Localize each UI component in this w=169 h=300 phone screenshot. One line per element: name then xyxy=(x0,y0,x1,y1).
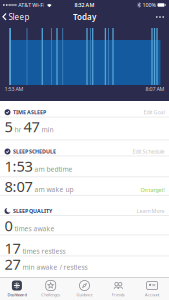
staticText: 8:32 AM xyxy=(74,1,94,9)
button[interactable]: More xyxy=(156,16,169,18)
staticText: TIME ASLEEP xyxy=(13,109,46,116)
button[interactable]: Account xyxy=(135,278,169,300)
staticText: AT&T Wi-Fi xyxy=(18,1,44,9)
staticText: 0 xyxy=(4,216,12,235)
staticText: 47 xyxy=(23,117,39,136)
staticText: Edit Schedule xyxy=(132,148,164,155)
staticText: Learn More xyxy=(136,207,164,214)
button[interactable]: Edit Goal xyxy=(143,109,164,116)
staticText: SLEEP QUALITY xyxy=(13,207,52,214)
staticText: 100% xyxy=(142,1,155,9)
staticText: Friends xyxy=(112,292,125,297)
staticText: SLEEP SCHEDULE xyxy=(13,148,56,155)
staticText: 5 xyxy=(4,117,12,136)
staticText: Today xyxy=(73,12,96,22)
staticText: 1:53 AM xyxy=(4,85,23,92)
staticText: hr xyxy=(14,125,21,134)
staticText: am wake up xyxy=(34,185,73,194)
staticText: 27 xyxy=(4,254,20,274)
button[interactable]: Dashboard xyxy=(0,278,34,300)
staticText: Challenges xyxy=(41,292,60,297)
staticText: Guidance xyxy=(76,292,92,297)
button[interactable]: Edit Schedule xyxy=(132,148,164,155)
button[interactable]: Guidance xyxy=(68,278,101,300)
staticText: 17 xyxy=(4,238,20,258)
staticText: 1:53 xyxy=(4,156,32,176)
staticText: Sleep xyxy=(8,12,29,22)
button[interactable]: Friends xyxy=(101,278,135,300)
staticText: On target! xyxy=(140,186,164,194)
staticText: 8:07 AM xyxy=(145,85,164,92)
staticText: times restless xyxy=(22,247,65,256)
button[interactable]: Challenges xyxy=(34,278,68,300)
staticText: 8:07 xyxy=(4,177,32,196)
staticText: Account xyxy=(145,292,159,297)
staticText: times awake xyxy=(14,224,54,233)
staticText: Dashboard xyxy=(7,292,26,297)
staticText: am bedtime xyxy=(34,165,72,174)
staticText: min awake / restless xyxy=(22,263,87,272)
button[interactable]: Learn More xyxy=(136,207,164,214)
button[interactable]: Back xyxy=(0,12,29,22)
staticText: min xyxy=(41,125,53,134)
staticText: Edit Goal xyxy=(143,109,164,116)
